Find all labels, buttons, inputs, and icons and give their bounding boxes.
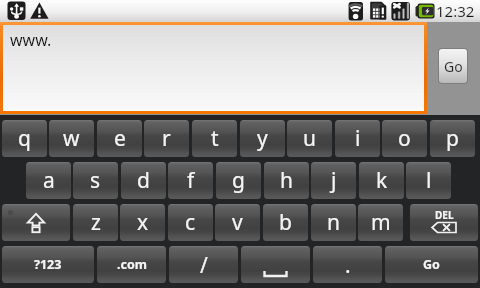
staticText: m — [371, 208, 391, 237]
staticText: p — [446, 124, 459, 153]
staticText: DEL — [435, 208, 454, 222]
button[interactable]: e — [97, 120, 142, 157]
staticText: d — [137, 166, 150, 195]
button[interactable]: x — [120, 204, 165, 241]
button[interactable]: o — [382, 120, 427, 157]
button[interactable]: Delete — [410, 204, 478, 241]
staticText: u — [303, 124, 316, 153]
staticText: h — [280, 166, 293, 195]
staticText: w — [63, 124, 80, 153]
button[interactable]: p — [430, 120, 475, 157]
staticText: q — [18, 124, 31, 153]
staticText: t — [211, 124, 219, 153]
button[interactable]: Go — [385, 246, 478, 283]
staticText: f — [187, 166, 195, 195]
button[interactable]: www. — [3, 25, 424, 111]
staticText: k — [376, 166, 388, 195]
button[interactable]: r — [144, 120, 189, 157]
button[interactable]: k — [359, 162, 404, 199]
button[interactable]: w — [49, 120, 94, 157]
staticText: ?123 — [34, 256, 62, 273]
staticText: s — [90, 166, 101, 195]
staticText: .com — [117, 256, 147, 273]
staticText: j — [331, 166, 337, 195]
button[interactable]: q — [2, 120, 47, 157]
staticText: b — [279, 208, 292, 237]
staticText: c — [185, 208, 196, 237]
staticText: www. — [10, 29, 52, 51]
staticText: v — [232, 208, 243, 237]
staticText: y — [257, 124, 268, 153]
button[interactable]: u — [287, 120, 332, 157]
button[interactable]: y — [240, 120, 285, 157]
staticText: / — [200, 251, 208, 280]
button[interactable]: l — [406, 162, 451, 199]
staticText: 12:32 — [436, 1, 475, 21]
staticText: Go — [423, 256, 440, 273]
button[interactable]: m — [358, 204, 403, 241]
button[interactable]: . — [313, 246, 382, 283]
button[interactable]: v — [215, 204, 260, 241]
button[interactable]: z — [73, 204, 118, 241]
staticText: i — [355, 124, 361, 153]
button[interactable]: .com — [97, 246, 166, 283]
staticText: l — [426, 166, 432, 195]
button[interactable]: f — [168, 162, 213, 199]
staticText: . — [345, 251, 351, 280]
staticText: n — [327, 208, 340, 237]
staticText: e — [114, 124, 126, 153]
staticText: r — [162, 124, 171, 153]
button[interactable]: i — [335, 120, 380, 157]
staticText: o — [398, 124, 411, 153]
button[interactable]: s — [73, 162, 118, 199]
button[interactable]: a — [26, 162, 71, 199]
button[interactable]: j — [311, 162, 356, 199]
button[interactable]: Space — [241, 246, 310, 283]
button[interactable]: b — [263, 204, 308, 241]
staticText: g — [232, 166, 245, 195]
button[interactable]: h — [264, 162, 309, 199]
button[interactable]: d — [121, 162, 166, 199]
button[interactable]: n — [311, 204, 356, 241]
button[interactable]: ?123 — [2, 246, 94, 283]
button[interactable]: t — [192, 120, 237, 157]
staticText: x — [137, 208, 149, 237]
staticText: Go — [444, 57, 463, 76]
button[interactable]: g — [216, 162, 261, 199]
button[interactable]: / — [169, 246, 238, 283]
staticText: a — [43, 166, 55, 195]
button[interactable]: c — [168, 204, 213, 241]
button[interactable]: Go — [439, 49, 467, 83]
staticText: z — [91, 208, 101, 237]
button[interactable]: Shift — [2, 204, 70, 241]
